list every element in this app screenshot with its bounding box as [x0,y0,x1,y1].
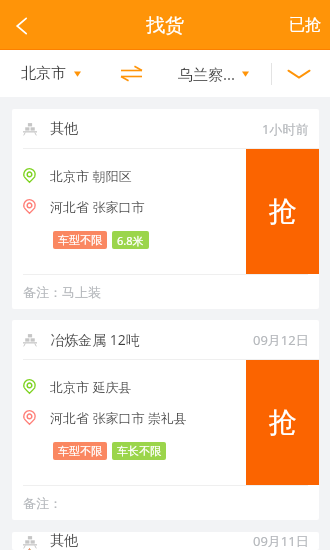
staticText: 冶炼金属 12吨 [50,330,140,349]
staticText: 6.8米 [117,233,144,248]
button[interactable]: 乌兰察... [151,50,271,97]
staticText: 其他 [50,120,78,138]
staticText: 河北省 张家口市 崇礼县 [50,409,187,425]
staticText: 已抢 [289,15,321,35]
staticText: 找货 [146,14,184,38]
button[interactable]: 已抢 [289,0,330,50]
staticText: 1小时前 [262,120,309,138]
staticText: 车长不限 [117,444,161,458]
button[interactable]: 其他 [12,532,319,550]
button[interactable]: 抢 [246,360,319,485]
button[interactable]: 返回 [0,0,44,50]
button[interactable]: 交换起终点 [111,50,151,97]
button[interactable]: 展开筛选 [272,50,330,97]
staticText: 抢 [269,194,297,229]
staticText: 抢 [269,405,297,440]
staticText: 北京市 朝阳区 [50,167,132,183]
staticText: 乌兰察... [178,64,236,84]
staticText: 车型不限 [58,444,102,458]
staticText: 车型不限 [58,233,102,247]
button[interactable]: 北京市 [0,50,111,97]
staticText: 备注： [23,495,62,511]
staticText: 09月12日 [253,331,309,349]
button[interactable]: 抢 [246,149,319,274]
button[interactable]: 其他 [12,109,319,309]
staticText: 其他 [50,532,78,550]
staticText: 备注：马上装 [23,284,101,300]
staticText: 北京市 [21,64,66,83]
button[interactable]: 冶炼金属 12吨 [12,320,319,520]
staticText: 北京市 延庆县 [50,378,132,394]
staticText: 河北省 张家口市 [50,198,145,214]
staticText: 09月11日 [253,532,309,550]
